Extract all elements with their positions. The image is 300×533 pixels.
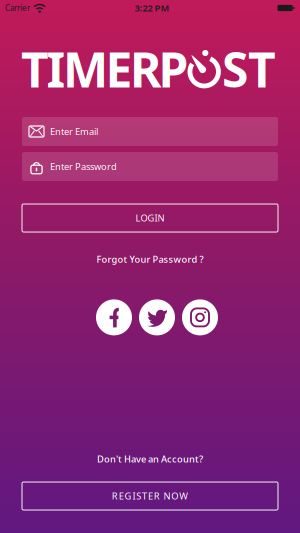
- button[interactable]: LOGIN: [22, 204, 278, 232]
- staticText: TIMERP: [21, 37, 188, 101]
- staticText: Don't Have an Account?: [97, 453, 203, 465]
- staticText: REGISTER NOW: [112, 490, 188, 502]
- button[interactable]: Forgot Your Password ?: [90, 250, 209, 268]
- button[interactable]: Facebook: [96, 299, 132, 335]
- button[interactable]: Enter Password: [22, 152, 278, 181]
- button[interactable]: REGISTER NOW: [22, 482, 278, 510]
- staticText: 3:22 PM: [134, 2, 169, 14]
- button[interactable]: Twitter: [139, 299, 175, 335]
- button[interactable]: Instagram: [182, 299, 218, 335]
- staticText: ST: [222, 37, 276, 101]
- staticText: LOGIN: [135, 212, 164, 224]
- staticText: Carrier: [5, 3, 30, 13]
- staticText: Forgot Your Password ?: [96, 253, 203, 265]
- button[interactable]: Enter Email: [22, 117, 278, 146]
- staticText: Enter Email: [50, 125, 98, 138]
- staticText: Enter Password: [50, 160, 117, 173]
